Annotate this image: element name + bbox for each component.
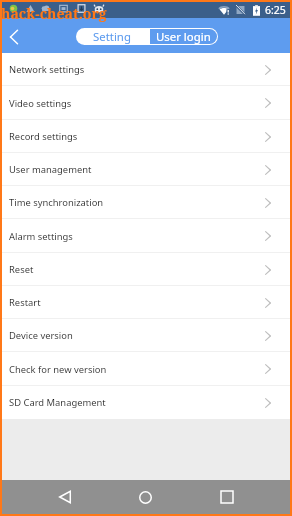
button[interactable]: Recent apps [205,480,249,514]
staticText: Check for new version [9,363,107,376]
staticText: Device version [9,329,73,342]
button[interactable]: SD Card Management [2,386,290,419]
staticText: Setting [93,29,131,45]
staticText: Reset [9,263,34,276]
button[interactable]: Time synchronization [2,186,290,219]
staticText: Video settings [9,97,72,110]
staticText: User login [156,29,211,45]
button[interactable]: Device version [2,319,290,352]
staticText: Restart [9,296,41,309]
button[interactable]: User management [2,153,290,186]
button[interactable]: Restart [2,286,290,319]
button[interactable]: Check for new version [2,352,290,386]
button[interactable]: Reset [2,253,290,286]
button[interactable]: Alarm settings [2,219,290,253]
staticText: Record settings [9,130,78,143]
button[interactable]: User login [148,28,218,45]
button[interactable]: Record settings [2,120,290,153]
staticText: 6:25 [265,3,286,17]
staticText: hack-cheat.org [1,4,107,23]
staticText: User management [9,163,92,176]
button[interactable]: Setting [76,28,148,45]
button[interactable]: Back [43,480,87,514]
button[interactable]: Video settings [2,86,290,120]
staticText: Time synchronization [9,196,104,209]
button[interactable]: Back [2,18,28,53]
staticText: Network settings [9,63,85,76]
staticText: Alarm settings [9,230,73,243]
button[interactable]: Home [123,480,167,514]
staticText: SD Card Management [9,396,106,409]
button[interactable]: Network settings [2,53,290,86]
